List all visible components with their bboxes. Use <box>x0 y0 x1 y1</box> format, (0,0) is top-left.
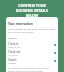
staticText: Please review the information carefully … <box>8 28 56 34</box>
staticText: 2 adults <box>8 62 17 65</box>
staticText: Your reservation <box>8 22 33 26</box>
staticText: Fri, 18 Oct <box>8 54 19 57</box>
staticText: Guests <box>8 58 17 62</box>
button[interactable]: Guests <box>8 57 56 65</box>
button[interactable]: Check-out <box>8 49 56 57</box>
staticText: Mon, 14 Oct <box>8 46 21 49</box>
staticText: By continuing you agree to the terms of … <box>8 67 56 72</box>
staticText: DETAILS <box>8 37 17 40</box>
staticText: Check-in <box>8 42 19 46</box>
staticText: Check-out <box>8 50 21 54</box>
staticText: CONFIRM YOUR BOOKING DETAILS BELOW <box>16 3 48 18</box>
button[interactable]: Check-in <box>8 41 56 49</box>
